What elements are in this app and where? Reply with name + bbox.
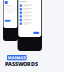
staticText: PASSWORDS [5,60,38,67]
staticText: MANAGE [8,55,26,60]
